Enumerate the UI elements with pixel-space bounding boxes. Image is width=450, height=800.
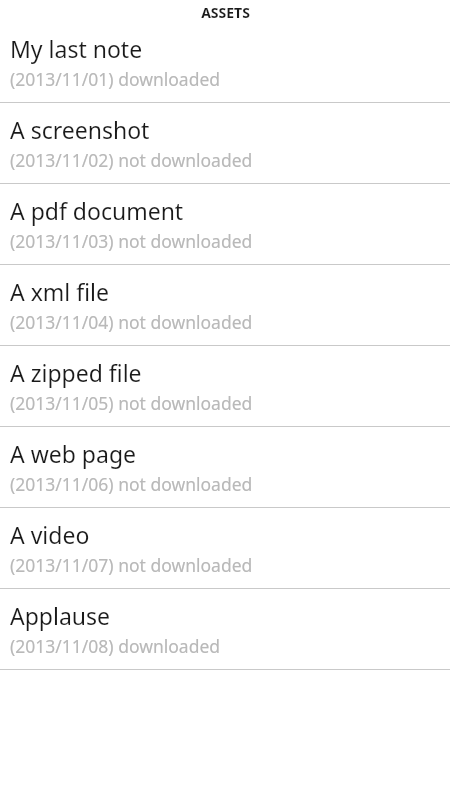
staticText: ASSETS [201, 3, 250, 22]
staticText: (2013/11/06) not downloaded [10, 472, 253, 496]
button[interactable]: A screenshot, (2013/11/02) not downloade… [0, 103, 450, 184]
button[interactable]: A zipped file, (2013/11/05) not download… [0, 346, 450, 427]
staticText: (2013/11/02) not downloaded [10, 148, 253, 172]
staticText: A pdf document [10, 195, 184, 226]
button[interactable]: A video, (2013/11/07) not downloaded [0, 508, 450, 589]
staticText: (2013/11/03) not downloaded [10, 229, 253, 253]
staticText: A zipped file [10, 357, 142, 388]
button[interactable]: A xml file, (2013/11/04) not downloaded [0, 265, 450, 346]
staticText: (2013/11/04) not downloaded [10, 310, 253, 334]
staticText: A xml file [10, 276, 110, 307]
staticText: (2013/11/01) downloaded [10, 67, 221, 91]
button[interactable]: My last note, (2013/11/01) downloaded [0, 22, 450, 103]
staticText: (2013/11/07) not downloaded [10, 553, 253, 577]
button[interactable]: A pdf document, (2013/11/03) not downloa… [0, 184, 450, 265]
button[interactable]: A web page, (2013/11/06) not downloaded [0, 427, 450, 508]
staticText: My last note [10, 33, 143, 64]
staticText: A video [10, 519, 90, 550]
staticText: (2013/11/08) downloaded [10, 634, 221, 658]
staticText: A web page [10, 438, 137, 469]
button[interactable]: Applause, (2013/11/08) downloaded [0, 589, 450, 670]
staticText: (2013/11/05) not downloaded [10, 391, 253, 415]
staticText: Applause [10, 600, 111, 631]
staticText: A screenshot [10, 114, 150, 145]
